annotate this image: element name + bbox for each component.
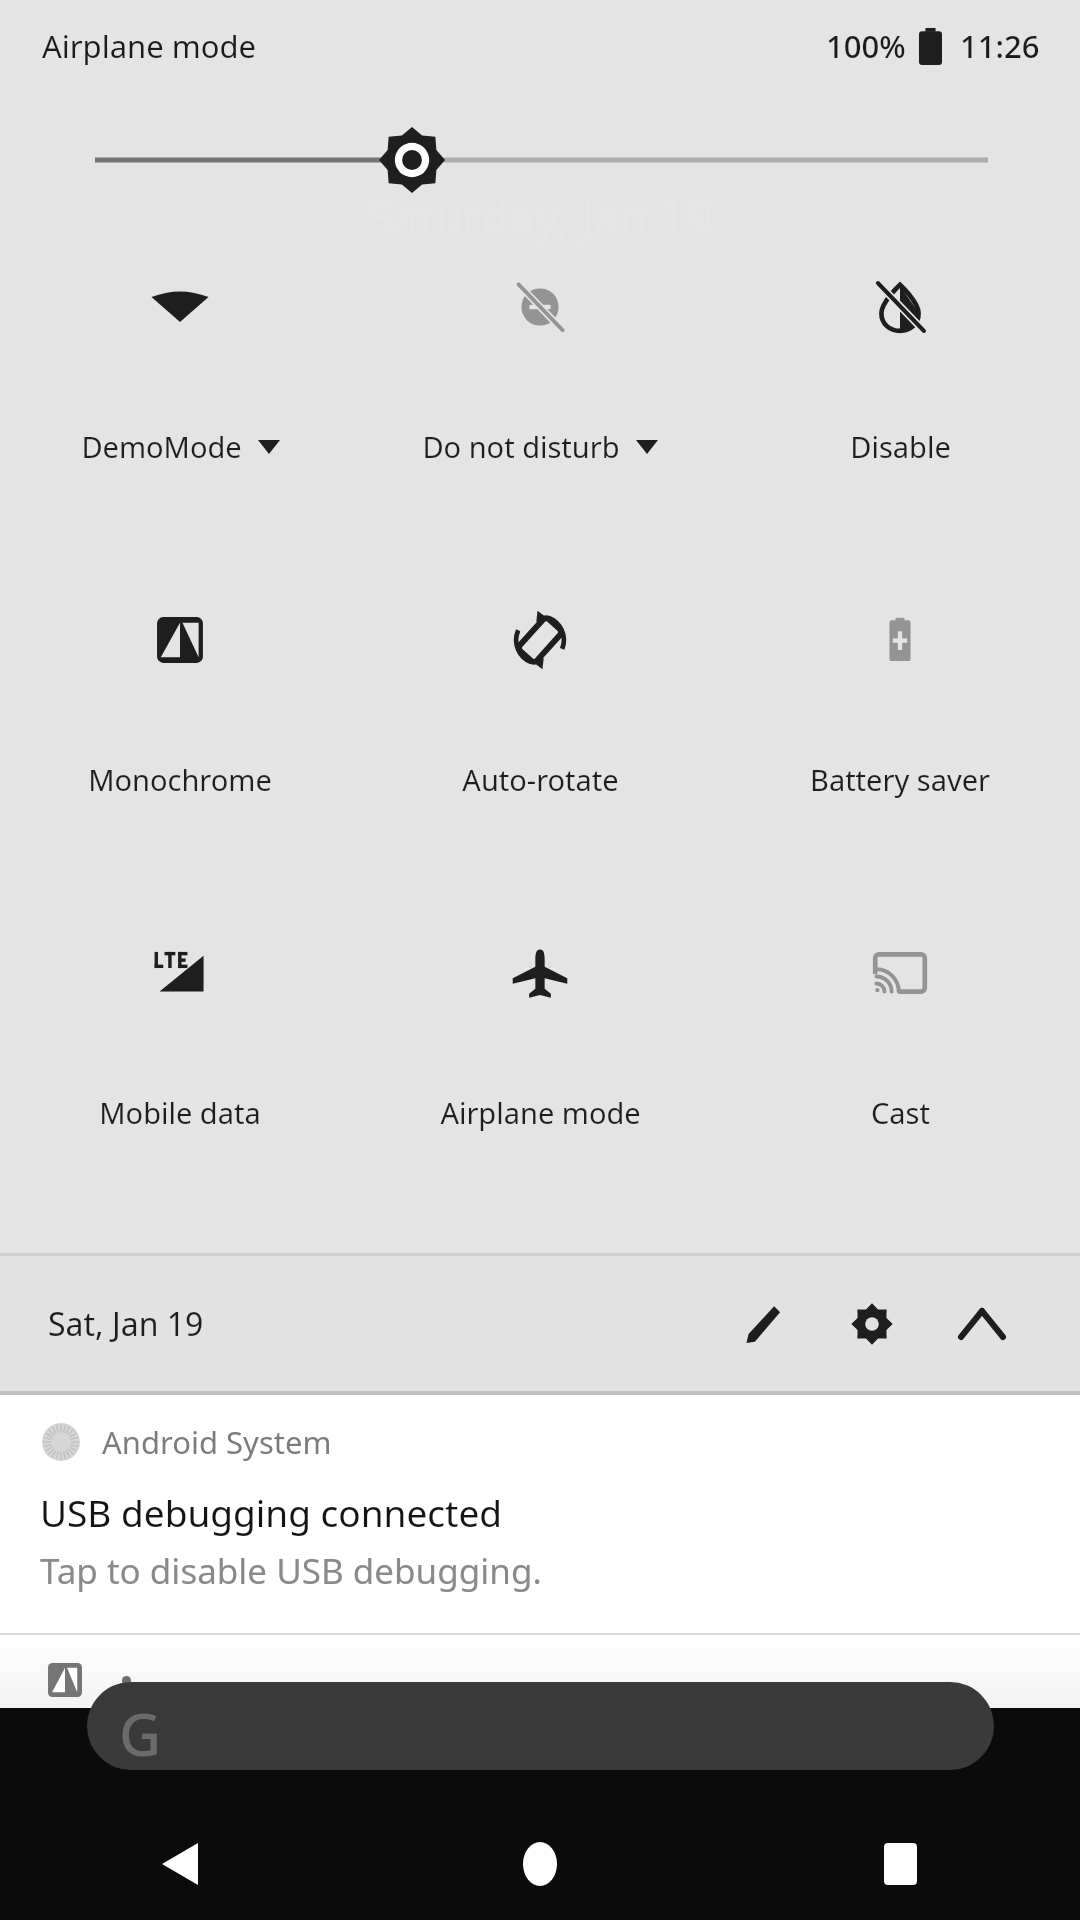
- button[interactable]: Home: [360, 1808, 720, 1920]
- button[interactable]: Search: [87, 1682, 994, 1770]
- staticText: Disable: [850, 427, 951, 466]
- staticText: Battery saver: [810, 760, 990, 799]
- button[interactable]: Collapse: [934, 1276, 1030, 1372]
- staticText: DemoMode: [81, 427, 242, 466]
- button[interactable]: Auto-rotate: [360, 601, 720, 811]
- button[interactable]: Back: [0, 1808, 360, 1920]
- button[interactable]: Brightness: [0, 120, 1080, 200]
- staticText: USB debugging connected: [40, 1487, 503, 1537]
- staticText: 100%: [826, 25, 906, 67]
- button[interactable]: Mobile data: [0, 934, 360, 1144]
- staticText: Airplane mode: [42, 25, 257, 67]
- button[interactable]: Recents: [720, 1808, 1080, 1920]
- staticText: G: [119, 1694, 162, 1770]
- button[interactable]: Settings: [824, 1276, 920, 1372]
- staticText: Sat, Jan 19: [48, 1302, 204, 1346]
- staticText: Do not disturb: [422, 427, 620, 466]
- staticText: Tap to disable USB debugging.: [40, 1547, 542, 1595]
- button[interactable]: Battery saver: [720, 601, 1080, 811]
- staticText: Auto-rotate: [462, 760, 619, 799]
- staticText: Saturday, Jan 19: [367, 185, 713, 248]
- button[interactable]: DemoMode: [0, 268, 360, 478]
- staticText: Mobile data: [99, 1093, 261, 1132]
- button[interactable]: Airplane mode: [360, 934, 720, 1144]
- button[interactable]: Disable: [720, 268, 1080, 478]
- button[interactable]: Cast: [720, 934, 1080, 1144]
- staticText: Cast: [871, 1093, 930, 1132]
- button[interactable]: Android System: [0, 1395, 1080, 1725]
- staticText: 11:26: [960, 25, 1040, 67]
- staticText: Monochrome: [88, 760, 272, 799]
- staticText: Android System: [102, 1421, 332, 1463]
- button[interactable]: Monochrome: [0, 601, 360, 811]
- button[interactable]: Edit: [714, 1276, 810, 1372]
- button[interactable]: Do not disturb: [360, 268, 720, 478]
- staticText: Airplane mode: [440, 1093, 641, 1132]
